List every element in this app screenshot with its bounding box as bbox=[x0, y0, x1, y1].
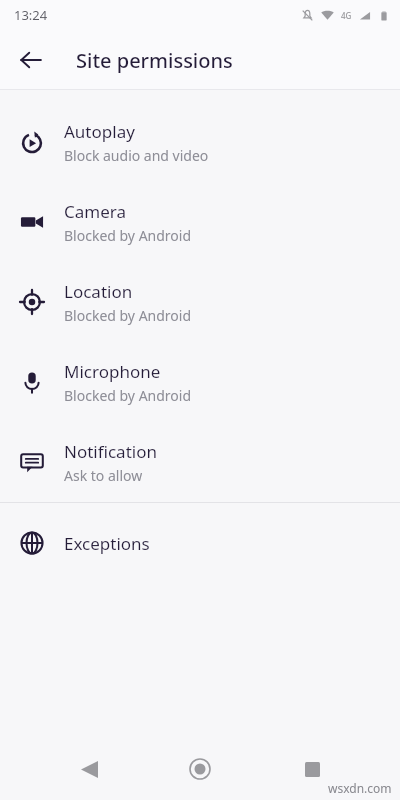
staticText: Camera bbox=[64, 200, 126, 223]
button[interactable]: Back bbox=[11, 40, 51, 80]
staticText: Notification bbox=[64, 440, 157, 463]
staticText: Autoplay bbox=[64, 120, 135, 143]
button[interactable]: Autoplay bbox=[0, 102, 400, 182]
staticText: Ask to allow bbox=[64, 466, 143, 485]
button[interactable]: Camera bbox=[0, 182, 400, 262]
button[interactable]: Location bbox=[0, 262, 400, 342]
staticText: Location bbox=[64, 280, 133, 303]
staticText: Block audio and video bbox=[64, 146, 209, 165]
button[interactable]: Recents bbox=[289, 746, 335, 792]
staticText: Exceptions bbox=[64, 532, 150, 555]
staticText: Microphone bbox=[64, 360, 161, 383]
staticText: Site permissions bbox=[76, 47, 233, 74]
button[interactable]: Exceptions bbox=[0, 503, 400, 583]
staticText: 4G bbox=[341, 10, 352, 21]
staticText: Blocked by Android bbox=[64, 226, 192, 245]
staticText: Blocked by Android bbox=[64, 386, 192, 405]
button[interactable]: Notification bbox=[0, 422, 400, 502]
button[interactable]: Microphone bbox=[0, 342, 400, 422]
button[interactable]: Home bbox=[177, 746, 223, 792]
button[interactable]: Back bbox=[66, 746, 112, 792]
staticText: wsxdn.com bbox=[328, 780, 392, 796]
staticText: 13:24 bbox=[14, 6, 48, 24]
staticText: Blocked by Android bbox=[64, 306, 192, 325]
